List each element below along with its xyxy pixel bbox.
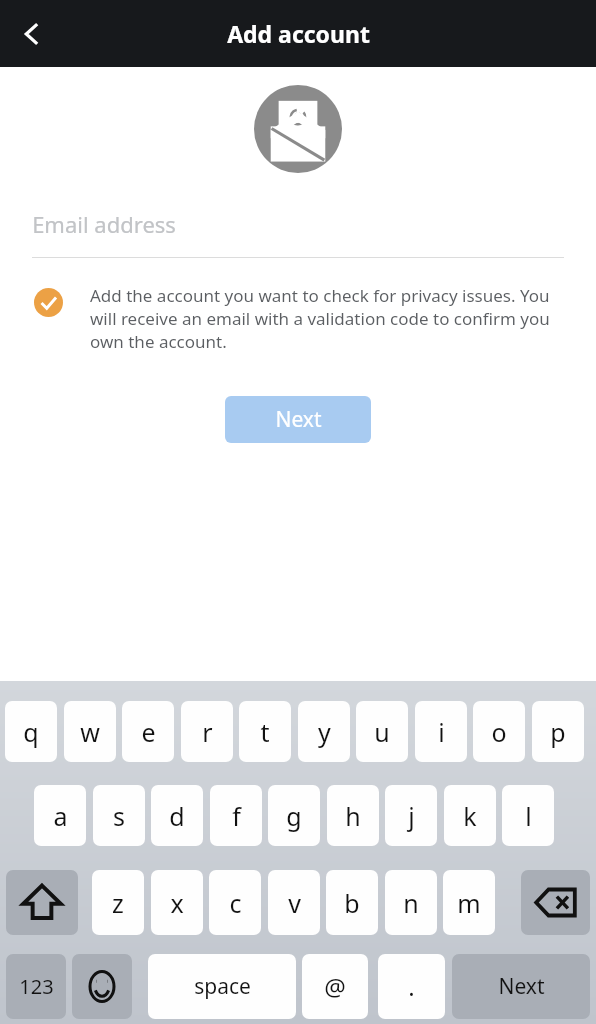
staticText: b [344,886,360,920]
button[interactable]: v [268,870,320,935]
button[interactable]: k [444,785,496,846]
staticText: l [525,799,532,833]
staticText: j [408,799,415,833]
staticText: Next [498,972,545,1001]
staticText: Add the account you want to check for pr… [90,284,568,353]
button[interactable]: t [239,701,291,762]
button[interactable]: r [181,701,233,762]
button[interactable]: p [532,701,584,762]
staticText: g [286,799,302,833]
button[interactable]: q [5,701,57,762]
button[interactable]: z [92,870,144,935]
staticText: Next [275,405,322,434]
staticText: k [463,799,477,833]
staticText: y [318,715,331,749]
button[interactable]: 123 [6,954,66,1019]
button[interactable]: Email address [0,191,596,257]
button[interactable]: w [64,701,116,762]
staticText: r [202,715,213,749]
staticText: e [141,715,156,749]
button[interactable]: s [93,785,145,846]
staticText: . [408,970,415,1003]
button[interactable]: . [378,954,445,1019]
button[interactable]: i [415,701,467,762]
button[interactable]: Backspace [521,870,590,935]
staticText: c [229,886,242,920]
button[interactable]: Emoji [72,954,132,1019]
staticText: x [170,886,184,920]
button[interactable]: x [151,870,203,935]
button[interactable]: Next [452,954,590,1019]
button[interactable]: c [209,870,261,935]
button[interactable]: space [148,954,296,1019]
staticText: p [550,715,566,749]
staticText: h [345,799,361,833]
button[interactable]: h [327,785,379,846]
button[interactable]: b [326,870,378,935]
staticText: o [491,715,507,749]
staticText: s [113,799,125,833]
button[interactable]: j [385,785,437,846]
staticText: f [232,799,241,833]
staticText: u [374,715,390,749]
button[interactable]: m [443,870,495,935]
staticText: Email address [32,209,176,239]
staticText: v [288,886,301,920]
button[interactable]: e [122,701,174,762]
staticText: q [23,715,39,749]
staticText: m [457,886,481,920]
button[interactable]: l [502,785,554,846]
staticText: 123 [19,973,54,1000]
staticText: w [80,715,100,749]
staticText: t [260,715,270,749]
staticText: d [169,799,185,833]
staticText: @ [324,970,346,1003]
staticText: i [438,715,445,749]
button[interactable]: Back [6,8,58,60]
button[interactable]: Next [225,396,371,443]
button[interactable]: @ [302,954,368,1019]
staticText: space [194,972,251,1001]
staticText: z [112,886,124,920]
button[interactable]: a [34,785,86,846]
button[interactable]: Shift [6,870,78,935]
staticText: n [403,886,419,920]
button[interactable]: d [151,785,203,846]
button[interactable]: y [298,701,350,762]
staticText: a [53,799,68,833]
button[interactable]: g [268,785,320,846]
button[interactable]: n [385,870,437,935]
staticText: Add account [227,18,370,49]
button[interactable]: u [356,701,408,762]
button[interactable]: f [210,785,262,846]
button[interactable]: o [473,701,525,762]
